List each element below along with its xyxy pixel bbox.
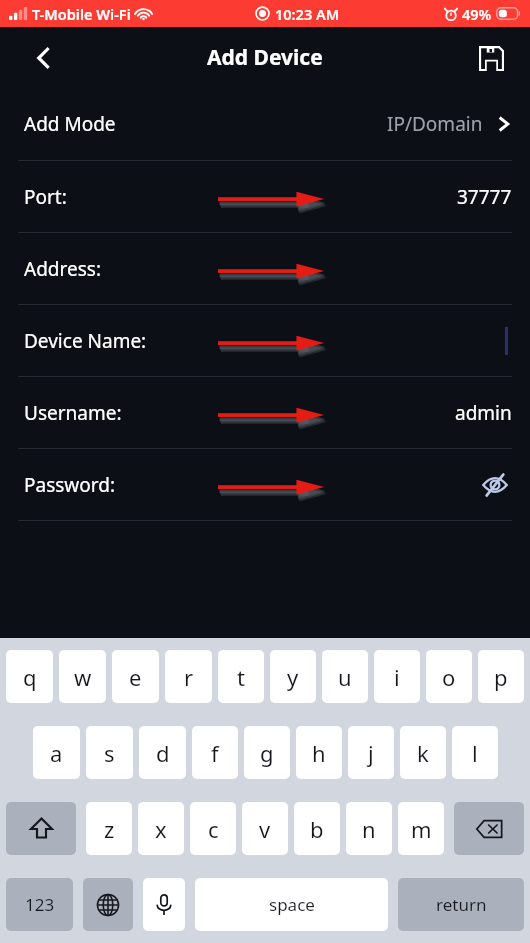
button[interactable]: space: [195, 878, 388, 931]
button[interactable]: Numbers: [6, 878, 73, 931]
staticText: a: [50, 738, 63, 768]
button[interactable]: Backspace: [454, 802, 524, 855]
staticText: space: [269, 893, 315, 916]
staticText: y: [287, 662, 299, 692]
staticText: Username:: [24, 400, 122, 426]
staticText: m: [411, 814, 432, 844]
button[interactable]: j: [348, 726, 394, 779]
staticText: Add Device: [207, 43, 323, 72]
staticText: d: [156, 738, 170, 768]
staticText: t: [237, 662, 245, 692]
button[interactable]: Save: [470, 37, 512, 79]
staticText: e: [129, 662, 142, 692]
staticText: b: [310, 814, 324, 844]
button[interactable]: Shift: [6, 802, 76, 855]
staticText: 37777: [457, 184, 512, 210]
button[interactable]: Username:: [0, 377, 530, 448]
staticText: 10:23 AM: [275, 4, 340, 24]
staticText: u: [338, 662, 352, 692]
staticText: Address:: [24, 256, 101, 282]
button[interactable]: s: [86, 726, 133, 779]
staticText: w: [74, 662, 92, 692]
staticText: n: [362, 814, 376, 844]
staticText: x: [155, 814, 167, 844]
staticText: l: [472, 738, 478, 768]
staticText: p: [494, 662, 508, 692]
staticText: s: [104, 738, 115, 768]
staticText: IP/Domain: [387, 111, 483, 137]
button[interactable]: Dictate: [143, 878, 185, 931]
staticText: r: [184, 662, 194, 692]
staticText: f: [211, 738, 219, 768]
button[interactable]: c: [190, 802, 236, 855]
staticText: Password:: [24, 472, 116, 498]
button[interactable]: Port:: [0, 161, 530, 232]
staticText: c: [208, 814, 219, 844]
button[interactable]: Password:: [0, 449, 530, 520]
staticText: j: [368, 738, 374, 768]
staticText: Port:: [24, 184, 67, 210]
button[interactable]: h: [296, 726, 342, 779]
button[interactable]: Device Name:: [0, 305, 530, 376]
button[interactable]: b: [294, 802, 340, 855]
button[interactable]: e: [112, 650, 159, 703]
button[interactable]: u: [322, 650, 368, 703]
button[interactable]: Change language: [83, 878, 133, 931]
staticText: o: [442, 662, 456, 692]
staticText: q: [23, 662, 37, 692]
button[interactable]: g: [244, 726, 290, 779]
staticText: k: [417, 738, 429, 768]
button[interactable]: Add Mode: [0, 88, 530, 160]
button[interactable]: v: [242, 802, 288, 855]
button[interactable]: p: [478, 650, 524, 703]
button[interactable]: d: [139, 726, 186, 779]
button[interactable]: r: [165, 650, 212, 703]
staticText: h: [312, 738, 326, 768]
staticText: Add Mode: [24, 111, 116, 137]
staticText: T-Mobile Wi-Fi: [32, 4, 131, 24]
staticText: 123: [25, 893, 55, 916]
button[interactable]: w: [59, 650, 106, 703]
button[interactable]: k: [400, 726, 446, 779]
button[interactable]: n: [346, 802, 392, 855]
button[interactable]: y: [270, 650, 316, 703]
staticText: i: [394, 662, 400, 692]
staticText: 49%: [462, 4, 492, 24]
button[interactable]: i: [374, 650, 420, 703]
button[interactable]: t: [218, 650, 264, 703]
button[interactable]: Show password: [478, 468, 512, 502]
button[interactable]: f: [192, 726, 238, 779]
button[interactable]: o: [426, 650, 472, 703]
staticText: Device Name:: [24, 328, 147, 354]
button[interactable]: return: [398, 878, 524, 931]
button[interactable]: a: [33, 726, 80, 779]
button[interactable]: Address:: [0, 233, 530, 304]
button[interactable]: x: [138, 802, 184, 855]
button[interactable]: z: [86, 802, 132, 855]
staticText: g: [260, 738, 274, 768]
staticText: v: [259, 814, 271, 844]
button[interactable]: l: [452, 726, 498, 779]
staticText: admin: [455, 400, 512, 426]
staticText: z: [104, 814, 115, 844]
button[interactable]: Back: [24, 38, 64, 78]
button[interactable]: q: [6, 650, 53, 703]
button[interactable]: m: [398, 802, 444, 855]
staticText: return: [436, 893, 487, 916]
